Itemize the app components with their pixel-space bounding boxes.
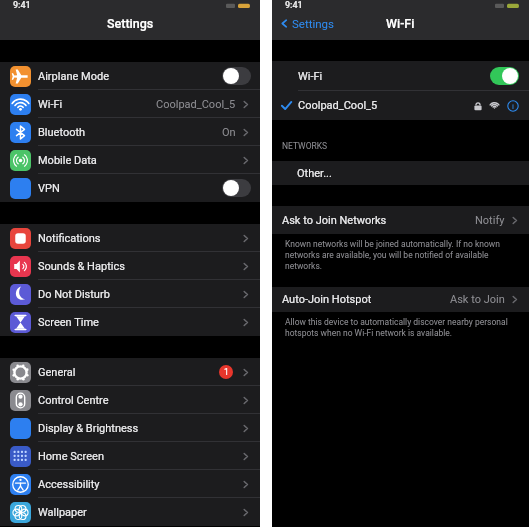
button[interactable]: Wi-Fi (0, 90, 260, 118)
button[interactable]: Back (279, 17, 334, 30)
staticText: i (512, 102, 514, 111)
staticText: Bluetooth (38, 126, 86, 139)
button[interactable]: Off (222, 67, 251, 85)
staticText: Wallpaper (38, 506, 87, 519)
staticText: Notifications (38, 232, 101, 245)
staticText: Notify (475, 214, 505, 227)
staticText: Mobile Data (38, 154, 97, 167)
staticText: Known networks will be joined automatica… (285, 239, 513, 271)
staticText: Sounds & Haptics (38, 260, 125, 273)
staticText: Control Centre (38, 394, 109, 407)
staticText: 9:41 (13, 0, 31, 8)
button[interactable]: Mobile Data (0, 146, 260, 174)
staticText: 9:41 (285, 0, 303, 8)
button[interactable]: Off (222, 179, 251, 197)
button[interactable]: Home Screen (0, 442, 260, 470)
staticText: Ask to Join (450, 293, 505, 306)
staticText: Ask to Join Networks (282, 214, 387, 227)
staticText: VPN (38, 182, 60, 195)
staticText: 1 (224, 367, 229, 377)
button[interactable]: Sounds & Haptics (0, 252, 260, 280)
button[interactable]: Do Not Disturb (0, 280, 260, 308)
button[interactable]: Wi-Fi (272, 61, 529, 91)
staticText: Settings (292, 17, 334, 30)
button[interactable]: Notifications (0, 224, 260, 252)
staticText: Wi-Fi (386, 16, 415, 31)
button[interactable]: Ask to Join Networks (272, 206, 529, 234)
staticText: Home Screen (38, 450, 104, 463)
staticText: Auto-Join Hotspot (282, 293, 372, 306)
staticText: Screen Time (38, 316, 99, 329)
staticText: Settings (107, 16, 154, 31)
button[interactable]: Other... (272, 161, 529, 185)
staticText: General (38, 366, 76, 379)
staticText: Coolpad_Cool_5 (156, 98, 236, 111)
staticText: Accessibility (38, 478, 100, 491)
button[interactable]: On (490, 67, 519, 85)
staticText: Allow this device to automatically disco… (285, 317, 517, 338)
button[interactable]: Bluetooth (0, 118, 260, 146)
button[interactable]: Screen Time (0, 308, 260, 336)
other: Back (279, 18, 290, 29)
staticText: Do Not Disturb (38, 288, 110, 301)
staticText: NETWORKS (282, 141, 328, 151)
staticText: On (222, 126, 236, 139)
staticText: Wi-Fi (38, 98, 63, 111)
button[interactable]: Auto-Join Hotspot (272, 287, 529, 312)
staticText: Display & Brightness (38, 422, 139, 435)
button[interactable]: Display & Brightness (0, 414, 260, 442)
button[interactable]: Airplane Mode (0, 62, 260, 90)
button[interactable]: Network details (507, 100, 519, 112)
staticText: Other... (297, 167, 332, 180)
button[interactable]: Control Centre (0, 386, 260, 414)
staticText: Wi-Fi (298, 70, 323, 83)
staticText: Airplane Mode (38, 70, 109, 83)
button[interactable]: Coolpad_Cool_5 (272, 91, 529, 120)
button[interactable]: Accessibility (0, 470, 260, 498)
button[interactable]: VPN (0, 174, 260, 202)
staticText: Coolpad_Cool_5 (298, 99, 378, 112)
button[interactable]: Wallpaper (0, 498, 260, 526)
button[interactable]: General (0, 358, 260, 386)
